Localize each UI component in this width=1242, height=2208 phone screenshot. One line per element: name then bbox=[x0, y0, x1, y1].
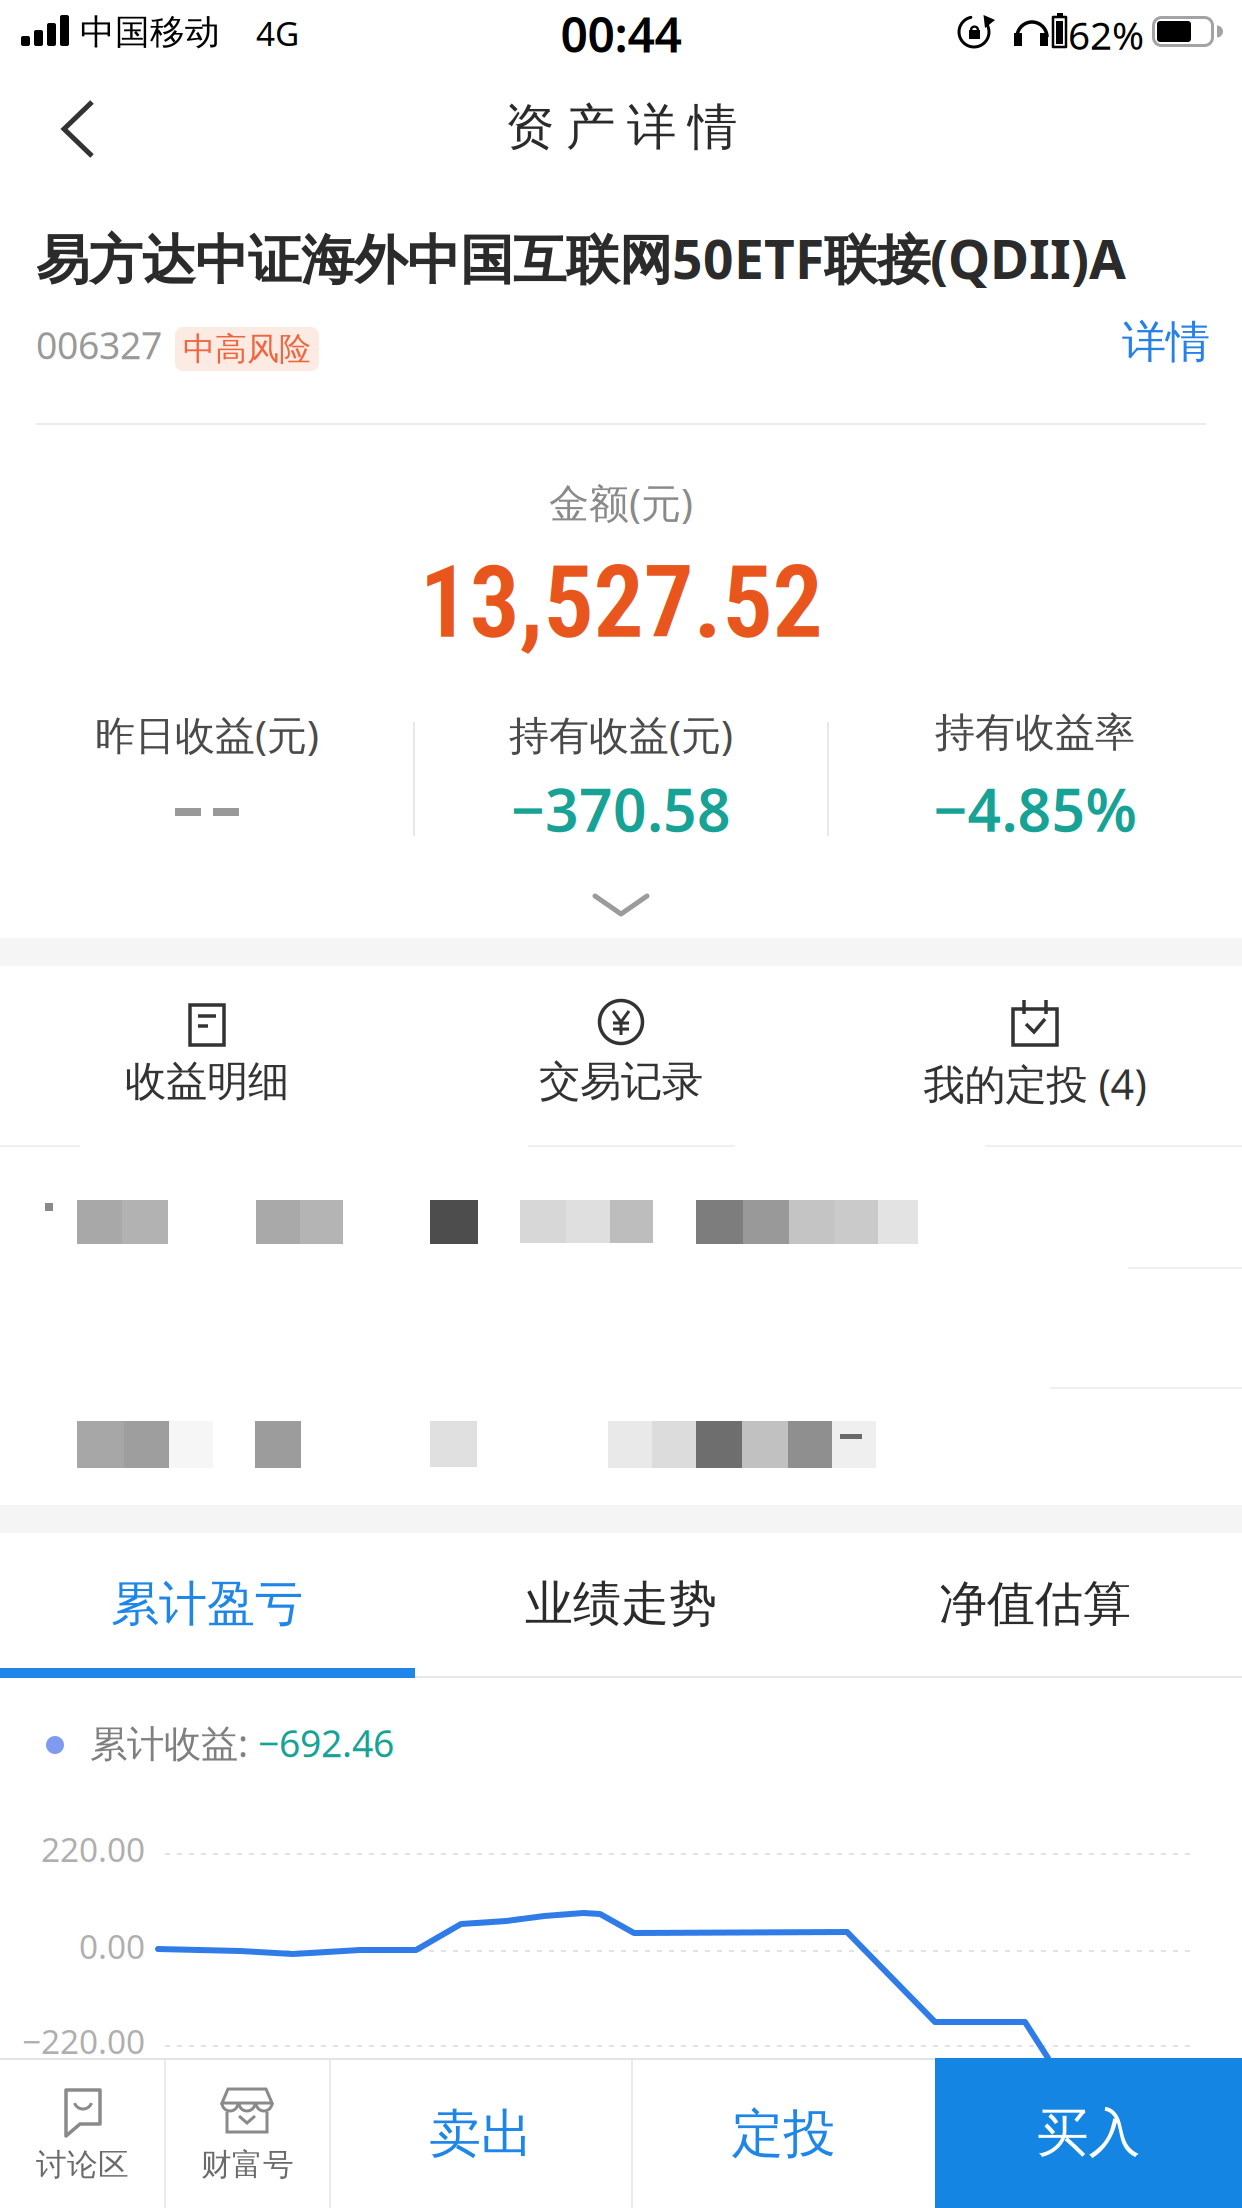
button[interactable]: 卖出 bbox=[0, 0, 302, 148]
staticText: 净值估算 bbox=[939, 1574, 1131, 1633]
staticText: 累计盈亏 bbox=[111, 1574, 303, 1633]
staticText: −692.46 bbox=[258, 1718, 394, 1768]
staticText: 收益明细 bbox=[125, 1056, 289, 1107]
staticText: 资产详情 bbox=[505, 97, 737, 158]
staticText: 持有收益率 bbox=[935, 708, 1135, 757]
staticText: 业绩走势 bbox=[525, 1574, 717, 1633]
staticText: 讨论区 bbox=[36, 2146, 129, 2184]
staticText: 易方达中证海外中国互联网50ETF联接(QDII)A bbox=[36, 223, 1126, 294]
staticText: −370.58 bbox=[511, 770, 731, 848]
staticText: 定投 bbox=[731, 2102, 835, 2166]
button[interactable]: 业绩走势 bbox=[414, 1531, 828, 1677]
button[interactable]: 详情 bbox=[1122, 315, 1210, 369]
button[interactable]: 我的定投 (4) bbox=[828, 980, 1242, 1120]
staticText: 我的定投 (4) bbox=[923, 1056, 1146, 1111]
staticText: 4G bbox=[256, 11, 299, 55]
button[interactable]: 买入 bbox=[0, 0, 307, 150]
staticText: −4.85% bbox=[933, 770, 1136, 848]
staticText: 00:44 bbox=[560, 2, 681, 66]
button[interactable]: 财富号 bbox=[165, 2058, 330, 2208]
staticText: 006327 bbox=[36, 320, 162, 370]
staticText: 62% bbox=[1068, 9, 1144, 60]
staticText: 0.00 bbox=[79, 1924, 145, 1968]
button[interactable]: 累计盈亏 bbox=[0, 1531, 414, 1677]
staticText: 财富号 bbox=[201, 2146, 294, 2184]
staticText: −220.00 bbox=[22, 2019, 145, 2063]
staticText: 13,527.52 bbox=[419, 544, 822, 661]
button[interactable]: 讨论区 bbox=[0, 2058, 165, 2208]
button[interactable]: 净值估算 bbox=[828, 1531, 1242, 1677]
staticText: 中国移动 bbox=[80, 11, 220, 54]
button[interactable]: 收益明细 bbox=[0, 980, 414, 1120]
button[interactable]: 交易记录 bbox=[414, 980, 828, 1120]
staticText: 持有收益(元) bbox=[509, 708, 733, 761]
staticText: 金额(元) bbox=[549, 476, 693, 529]
staticText: 累计收益: bbox=[90, 1718, 258, 1768]
staticText: 220.00 bbox=[41, 1827, 145, 1871]
staticText: 昨日收益(元) bbox=[95, 708, 319, 761]
button[interactable]: 定投 bbox=[0, 0, 303, 148]
staticText: 卖出 bbox=[429, 2102, 533, 2166]
staticText: 详情 bbox=[1122, 315, 1210, 369]
staticText: 买入 bbox=[1036, 2101, 1140, 2165]
staticText: 交易记录 bbox=[539, 1056, 703, 1107]
button[interactable]: Expand bbox=[570, 875, 672, 937]
button[interactable]: Back bbox=[30, 80, 140, 178]
staticText: 中高风险 bbox=[183, 329, 311, 369]
